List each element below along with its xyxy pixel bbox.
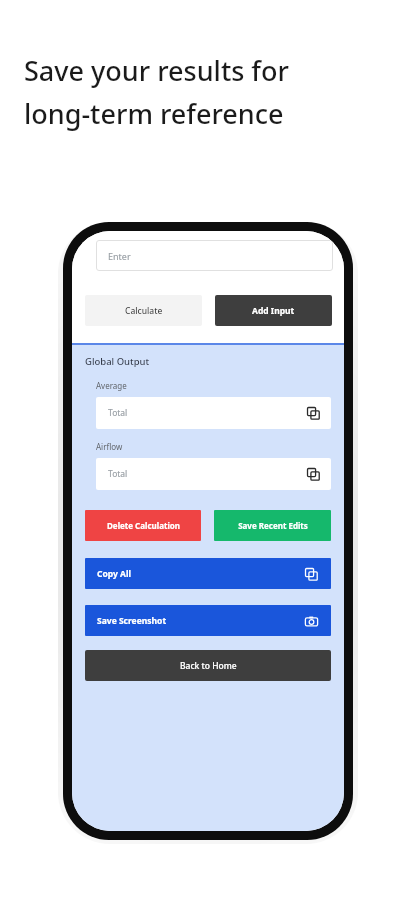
staticText: Add Input [252, 305, 295, 317]
staticText: Total [108, 407, 128, 419]
staticText: Back to Home [180, 660, 237, 672]
button[interactable]: Back to Home [85, 650, 331, 681]
button[interactable]: Delete Calculation [85, 510, 201, 541]
staticText: Delete Calculation [107, 520, 180, 531]
button[interactable]: Total [96, 397, 331, 429]
staticText: Enter [108, 250, 131, 262]
staticText: Save Recent Edits [238, 520, 308, 531]
button[interactable]: Save Screenshot [85, 605, 331, 636]
staticText: Global Output [85, 355, 150, 368]
button[interactable]: Copy Airflow [305, 466, 321, 482]
staticText: Copy All [97, 568, 131, 580]
button[interactable]: Copy Average [305, 405, 321, 421]
staticText: Calculate [125, 305, 163, 317]
button[interactable]: Calculate [85, 295, 202, 326]
staticText: Save Screenshot [97, 615, 167, 627]
button[interactable]: Total [96, 458, 331, 490]
staticText: Airflow [96, 441, 123, 452]
staticText: Average [96, 380, 127, 391]
button[interactable]: Enter [96, 240, 333, 271]
staticText: Save your results for [24, 52, 289, 89]
button[interactable]: Add Input [215, 295, 332, 326]
button[interactable]: Save Recent Edits [214, 510, 331, 541]
button[interactable]: Copy All [85, 558, 331, 589]
staticText: long-term reference [24, 95, 284, 132]
staticText: Total [108, 468, 128, 480]
